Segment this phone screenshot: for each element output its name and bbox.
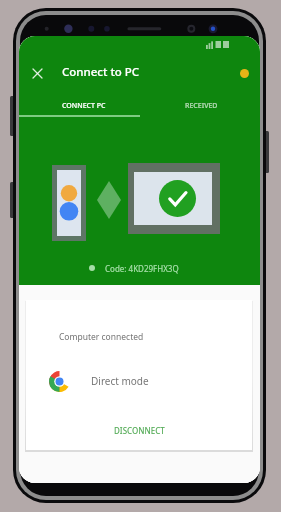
button[interactable]: Direct mode	[91, 374, 149, 388]
button[interactable]: Close	[27, 63, 48, 84]
button[interactable]: Computer connected	[59, 331, 144, 343]
button[interactable]: RECEIVED	[139, 94, 260, 118]
staticText: DISCONNECT	[114, 425, 165, 436]
staticText: CONNECT PC	[62, 101, 106, 111]
button[interactable]: CONNECT PC	[19, 94, 139, 118]
button[interactable]: DISCONNECT	[102, 417, 177, 444]
staticText: Code: 4KD29FHX3Q	[105, 263, 179, 274]
button[interactable]: Account	[233, 62, 255, 84]
staticText: Connect to PC	[62, 64, 140, 80]
staticText: RECEIVED	[185, 101, 218, 111]
